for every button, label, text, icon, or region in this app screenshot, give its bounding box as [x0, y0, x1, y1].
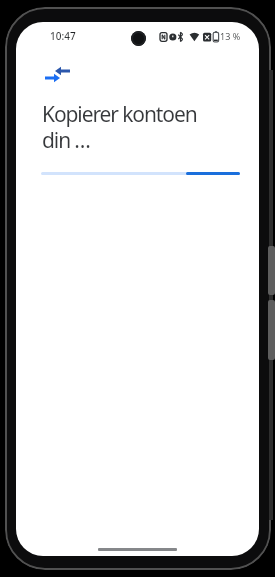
staticText: Kopierer kontoen din …: [42, 100, 197, 154]
staticText: 13 %: [220, 30, 241, 42]
staticText: 10:47: [50, 29, 76, 43]
